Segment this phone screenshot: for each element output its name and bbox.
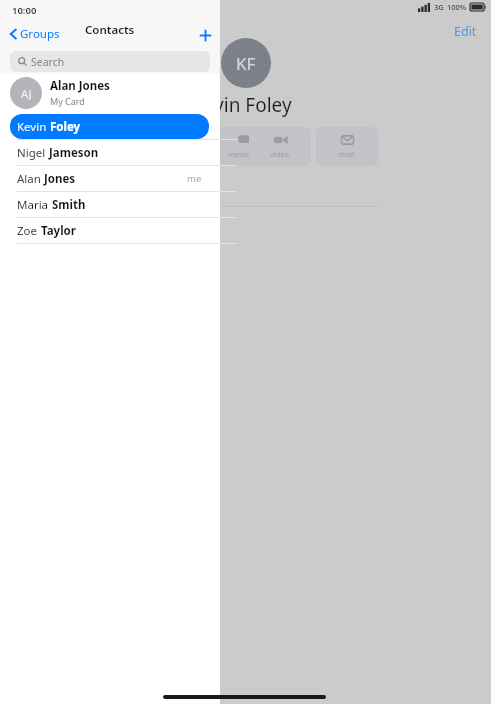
staticText: Kevin (17, 119, 50, 135)
button[interactable]: Edit (450, 20, 481, 43)
staticText: Zoe (17, 223, 41, 239)
staticText: Jones (44, 171, 76, 187)
staticText: 3G (434, 2, 444, 12)
button[interactable]: mail (316, 127, 378, 166)
staticText: Jameson (49, 145, 99, 161)
button[interactable]: video (249, 127, 311, 166)
staticText: video (270, 149, 290, 159)
staticText: AJ (21, 86, 32, 101)
button[interactable]: Add contact (191, 25, 220, 46)
staticText: 10:00 (12, 4, 37, 17)
staticText: Nigel (17, 145, 49, 161)
staticText: me (187, 172, 202, 185)
staticText: Contacts (85, 22, 135, 38)
staticText: KF (236, 52, 256, 75)
staticText: mail (339, 149, 355, 159)
staticText: Search (31, 55, 65, 69)
button[interactable]: AJ (0, 74, 220, 111)
staticText: Kevin Foley (192, 92, 292, 118)
staticText: Taylor (41, 223, 76, 239)
staticText: Edit (454, 23, 477, 40)
staticText: Groups (20, 26, 60, 42)
staticText: message (228, 149, 260, 159)
button[interactable]: Alan (0, 166, 220, 191)
button[interactable]: Groups (6, 22, 64, 46)
staticText: 100% (447, 2, 467, 12)
button[interactable]: Nigel (0, 140, 220, 165)
button[interactable]: message (213, 127, 275, 166)
staticText: Smith (52, 197, 86, 213)
button[interactable]: Search (10, 51, 210, 72)
button[interactable]: Kevin (10, 114, 209, 139)
staticText: Alan Jones (50, 78, 110, 94)
button[interactable]: Zoe (0, 218, 220, 243)
staticText: Maria (17, 197, 52, 213)
staticText: Alan (17, 171, 44, 187)
staticText: Foley (50, 119, 81, 135)
staticText: My Card (50, 95, 85, 107)
button[interactable]: Maria (0, 192, 220, 217)
